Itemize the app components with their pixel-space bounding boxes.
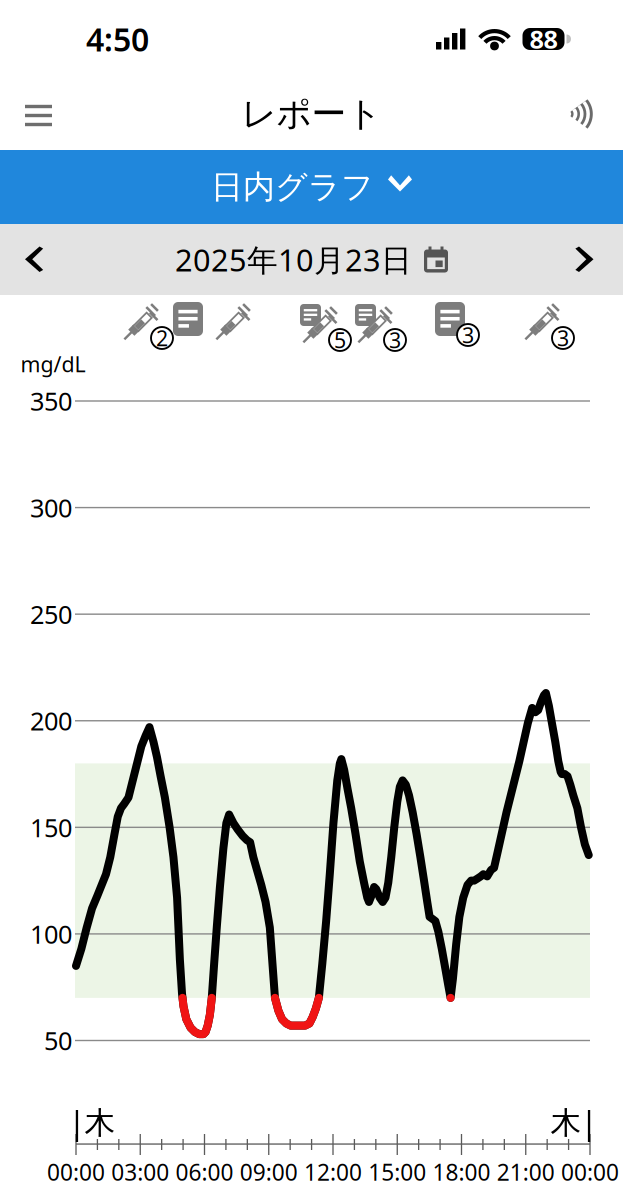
staticText: 50: [44, 1024, 72, 1057]
staticText: 200: [30, 704, 72, 737]
button[interactable]: Next day: [553, 224, 623, 294]
staticText: 日内グラフ: [211, 167, 374, 207]
staticText: 150: [30, 810, 72, 844]
button[interactable]: 2025年10月23日: [175, 225, 448, 294]
staticText: 5: [334, 326, 346, 354]
staticText: 03:00: [111, 1157, 169, 1187]
staticText: 00:00: [561, 1157, 619, 1187]
staticText: 2025年10月23日: [175, 239, 412, 280]
staticText: 09:00: [240, 1157, 298, 1187]
staticText: 3: [557, 324, 569, 352]
staticText: 00:00: [47, 1157, 105, 1187]
staticText: 3: [389, 326, 401, 354]
staticText: 350: [30, 384, 72, 418]
button[interactable]: Previous day: [0, 224, 70, 294]
staticText: 18:00: [432, 1157, 490, 1187]
staticText: 木: [84, 1104, 115, 1142]
staticText: レポート: [241, 93, 381, 135]
staticText: 06:00: [175, 1157, 233, 1187]
staticText: 21:00: [497, 1157, 555, 1187]
staticText: 88: [529, 22, 557, 56]
button[interactable]: Transmit data: [553, 77, 611, 151]
staticText: 4:50: [86, 18, 149, 60]
staticText: 木: [550, 1104, 581, 1142]
button[interactable]: 日内グラフ: [0, 150, 623, 224]
staticText: 12:00: [304, 1157, 362, 1187]
staticText: mg/dL: [20, 350, 85, 378]
staticText: 100: [30, 917, 72, 951]
button[interactable]: Menu: [12, 78, 72, 150]
staticText: 3: [462, 321, 474, 349]
staticText: 2: [156, 324, 168, 352]
staticText: 300: [30, 491, 72, 524]
staticText: 15:00: [368, 1157, 426, 1187]
staticText: 250: [30, 597, 72, 631]
